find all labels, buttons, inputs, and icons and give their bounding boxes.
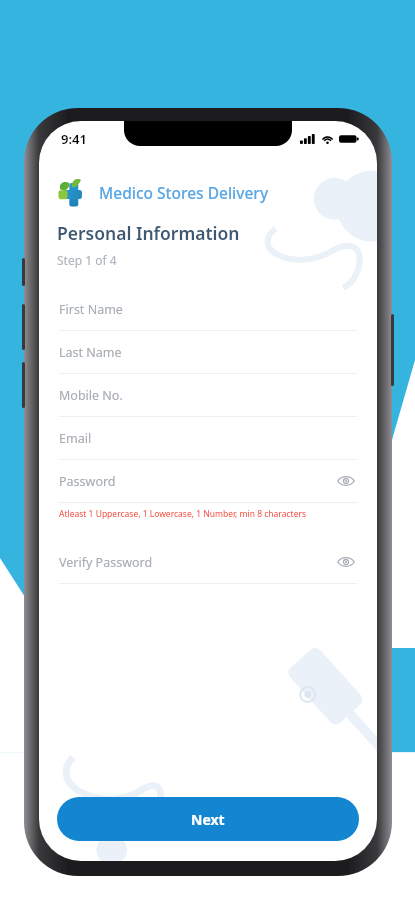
staticText: Last Name <box>59 344 357 361</box>
button[interactable]: Verify Password <box>39 541 377 584</box>
staticText: Mobile No. <box>59 387 357 404</box>
staticText: Step 1 of 4 <box>57 252 117 268</box>
button[interactable]: Password <box>39 460 377 503</box>
staticText: Email <box>59 430 357 447</box>
staticText: Verify Password <box>59 554 335 571</box>
staticText: 9:41 <box>61 130 87 148</box>
button[interactable]: Show password <box>335 551 357 573</box>
button[interactable]: Mobile No. <box>39 374 377 417</box>
button[interactable]: Show password <box>335 470 357 492</box>
staticText: Atleast 1 Uppercase, 1 Lowercase, 1 Numb… <box>59 508 307 520</box>
staticText: First Name <box>59 301 357 318</box>
staticText: Password <box>59 473 335 490</box>
button[interactable]: Email <box>39 417 377 460</box>
staticText: Personal Information <box>57 221 240 245</box>
staticText: Next <box>191 810 225 829</box>
button[interactable]: First Name <box>39 288 377 331</box>
staticText: Medico Stores Delivery <box>99 182 269 203</box>
button[interactable]: Next <box>57 797 359 841</box>
button[interactable]: Last Name <box>39 331 377 374</box>
